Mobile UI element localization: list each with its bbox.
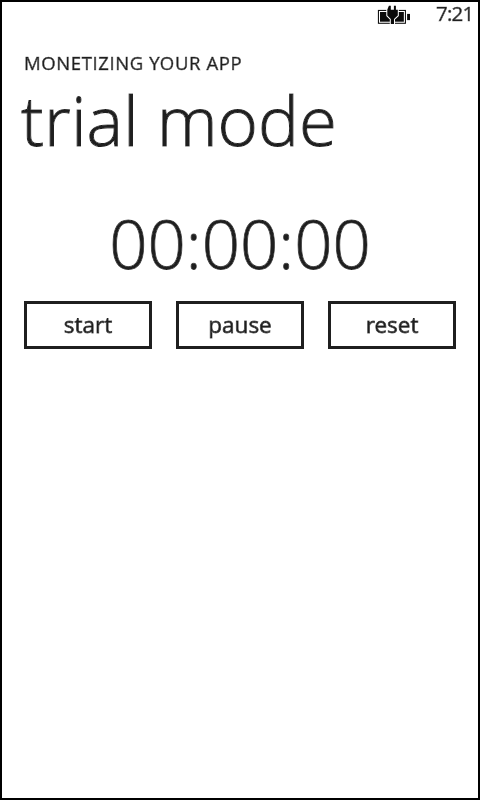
staticText: 00:00:00 (2, 197, 478, 288)
other: Battery charging (374, 2, 414, 28)
button[interactable]: start (24, 301, 152, 349)
staticText: 00:00:00 (2, 197, 478, 288)
staticText: pause (176, 309, 304, 340)
staticText: MONETIZING YOUR APP (24, 50, 284, 75)
staticText: 7:21 (436, 0, 480, 27)
button[interactable]: reset (328, 301, 456, 349)
staticText: MONETIZING YOUR APP (24, 50, 284, 75)
staticText: 7:21 (436, 0, 480, 27)
staticText: start (24, 309, 152, 340)
staticText: trial mode (21, 72, 381, 166)
button[interactable]: pause (176, 301, 304, 349)
staticText: pause (176, 309, 304, 340)
staticText: reset (328, 309, 456, 340)
staticText: reset (328, 309, 456, 340)
staticText: trial mode (21, 72, 381, 166)
staticText: start (24, 309, 152, 340)
